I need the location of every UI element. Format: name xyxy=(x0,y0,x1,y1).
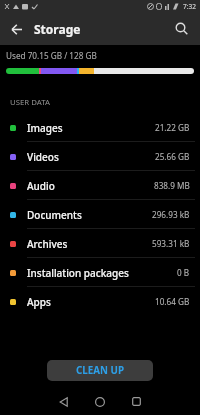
staticText: 838.9 MB xyxy=(154,180,190,191)
button[interactable]: Apps xyxy=(0,287,200,316)
staticText: Archives xyxy=(27,237,68,251)
staticText: 7:32 xyxy=(183,2,196,11)
staticText: Images xyxy=(27,121,63,135)
staticText: 0 B xyxy=(177,267,190,278)
staticText: 593.31 kB xyxy=(152,238,190,249)
button[interactable]: CLEAN UP xyxy=(47,360,153,381)
staticText: CLEAN UP xyxy=(76,364,125,377)
button[interactable] xyxy=(88,388,112,415)
staticText: 25.66 GB xyxy=(155,151,190,162)
staticText: USER DATA xyxy=(10,97,50,108)
staticText: 10.64 GB xyxy=(155,296,190,307)
button[interactable]: Installation packages xyxy=(0,258,200,287)
button[interactable] xyxy=(52,388,76,415)
button[interactable]: Audio xyxy=(0,171,200,200)
staticText: Apps xyxy=(27,295,51,309)
staticText: 296.93 kB xyxy=(152,209,190,220)
staticText: Used 70.15 GB / 128 GB xyxy=(6,50,97,61)
button[interactable]: Videos xyxy=(0,142,200,171)
button[interactable]: Images xyxy=(0,113,200,142)
staticText: Documents xyxy=(27,208,82,222)
staticText: Installation packages xyxy=(27,266,129,280)
staticText: Audio xyxy=(27,179,55,193)
button[interactable]: Documents xyxy=(0,200,200,229)
button[interactable]: Archives xyxy=(0,229,200,258)
staticText: Storage xyxy=(34,21,81,37)
staticText: 21.22 GB xyxy=(155,122,190,133)
button[interactable] xyxy=(164,13,200,45)
button[interactable] xyxy=(124,388,148,415)
button[interactable] xyxy=(0,13,32,45)
staticText: Videos xyxy=(27,150,59,164)
